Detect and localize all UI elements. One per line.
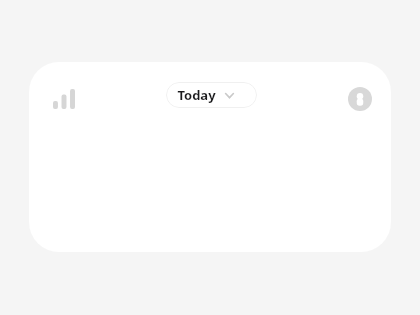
staticText: Today	[177, 86, 216, 104]
button[interactable]: Statistics	[46, 81, 82, 117]
button[interactable]: Profile	[342, 81, 378, 117]
button[interactable]: Today	[166, 82, 257, 108]
